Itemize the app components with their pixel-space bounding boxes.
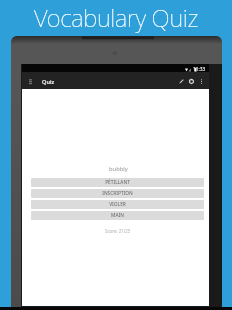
staticText: VIOLER (109, 201, 126, 208)
staticText: PÉTILLANT (105, 179, 130, 186)
staticText: INSCRIPTION (102, 190, 133, 197)
button[interactable]: INSCRIPTION (31, 189, 204, 198)
button[interactable]: Open navigation drawer (24, 75, 36, 87)
button[interactable]: MAIN (31, 211, 204, 220)
staticText: Score: 21/25 (105, 228, 131, 234)
staticText: MAIN (111, 212, 124, 219)
button[interactable]: VIOLER (31, 200, 204, 209)
staticText: bubbly (109, 165, 128, 173)
button[interactable]: More options (196, 76, 206, 86)
staticText: 11:33 (193, 66, 206, 73)
staticText: Vocabulary Quiz (34, 1, 199, 34)
button[interactable]: PÉTILLANT (31, 178, 204, 187)
button[interactable]: Refresh (186, 76, 196, 86)
button[interactable]: Edit (176, 76, 186, 86)
staticText: Quiz (42, 78, 55, 86)
